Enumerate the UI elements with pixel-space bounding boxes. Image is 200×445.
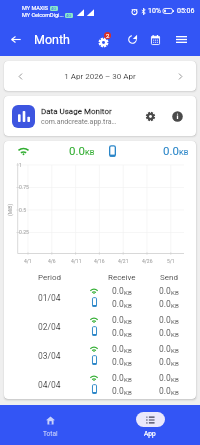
staticText: 0.75 bbox=[19, 184, 29, 190]
staticText: com.andcreate.app.tra… bbox=[41, 118, 117, 126]
staticText: 03/04 bbox=[38, 351, 61, 361]
staticText: 0.0 bbox=[159, 286, 171, 296]
button[interactable]: Previous period bbox=[4, 61, 36, 91]
staticText: KB bbox=[124, 347, 132, 354]
button[interactable]: Alerts settings bbox=[94, 28, 117, 51]
staticText: App bbox=[144, 430, 156, 438]
staticText: 0.25 bbox=[19, 229, 29, 235]
staticText: KB bbox=[171, 389, 179, 396]
staticText: 0.0 bbox=[159, 315, 171, 325]
staticText: Send bbox=[160, 273, 178, 282]
staticText: KB bbox=[124, 289, 132, 296]
button[interactable]: Calendar bbox=[144, 28, 167, 51]
button[interactable]: Menu bbox=[170, 28, 193, 51]
staticText: 0.0 bbox=[112, 315, 124, 325]
staticText: 5/1 bbox=[167, 258, 175, 264]
staticText: 0.0 bbox=[159, 328, 171, 338]
staticText: Period bbox=[38, 273, 61, 282]
staticText: 0.0 bbox=[112, 286, 124, 296]
staticText: KB bbox=[124, 331, 132, 338]
button[interactable]: App settings bbox=[140, 106, 161, 127]
staticText: 0.5 bbox=[19, 207, 26, 213]
button[interactable]: Next period bbox=[164, 61, 196, 91]
staticText: KB bbox=[124, 318, 132, 325]
staticText: 0.0 bbox=[69, 144, 85, 157]
staticText: Receive bbox=[108, 273, 136, 282]
staticText: 0.0 bbox=[159, 357, 171, 367]
button[interactable]: Data Usage Monitor bbox=[4, 96, 196, 136]
staticText: 0.0 bbox=[159, 344, 171, 354]
staticText: KB bbox=[85, 148, 95, 157]
staticText: KB bbox=[171, 347, 179, 354]
button[interactable]: 02/04 bbox=[11, 312, 196, 341]
staticText: 10% bbox=[148, 7, 161, 15]
staticText: 05:06 bbox=[177, 7, 195, 15]
button[interactable]: Total bbox=[0, 405, 100, 445]
staticText: KB bbox=[171, 331, 179, 338]
button[interactable]: App bbox=[100, 405, 200, 445]
staticText: MY CelcomDigi... bbox=[22, 12, 64, 18]
staticText: KB bbox=[171, 376, 179, 383]
staticText: 4/21 bbox=[118, 258, 129, 264]
staticText: 4G bbox=[51, 6, 57, 11]
staticText: 4/26 bbox=[142, 258, 153, 264]
staticText: 0.0 bbox=[159, 299, 171, 309]
staticText: (MiB) bbox=[7, 203, 13, 216]
staticText: 1 Apr 2026 – 30 Apr bbox=[36, 72, 164, 81]
staticText: KB bbox=[124, 389, 132, 396]
staticText: 0.0 bbox=[112, 373, 124, 383]
staticText: MY MAXIS bbox=[22, 5, 49, 11]
button[interactable]: App info bbox=[167, 106, 188, 127]
staticText: 1 bbox=[19, 162, 22, 168]
staticText: KB bbox=[171, 318, 179, 325]
staticText: 4/1 bbox=[24, 258, 32, 264]
staticText: 0.0 bbox=[112, 386, 124, 396]
staticText: KB bbox=[179, 148, 189, 157]
staticText: 0.0 bbox=[112, 344, 124, 354]
staticText: 04/04 bbox=[38, 380, 61, 390]
staticText: 2 bbox=[106, 32, 110, 39]
staticText: Data Usage Monitor bbox=[41, 107, 112, 116]
staticText: 4/16 bbox=[94, 258, 105, 264]
staticText: 0.0 bbox=[159, 373, 171, 383]
staticText: Total bbox=[43, 430, 58, 438]
staticText: 4/11 bbox=[71, 258, 82, 264]
staticText: KB bbox=[124, 376, 132, 383]
staticText: KB bbox=[171, 302, 179, 309]
staticText: KB bbox=[124, 360, 132, 367]
staticText: 0.0 bbox=[112, 299, 124, 309]
staticText: 0.0 bbox=[159, 386, 171, 396]
staticText: 4G bbox=[66, 13, 72, 18]
button[interactable]: Back bbox=[3, 26, 29, 52]
button[interactable]: 01/04 bbox=[11, 283, 196, 312]
button[interactable]: 03/04 bbox=[11, 341, 196, 370]
staticText: 01/04 bbox=[38, 293, 61, 303]
staticText: Month bbox=[34, 32, 70, 47]
button[interactable]: Refresh bbox=[121, 28, 144, 51]
staticText: KB bbox=[171, 360, 179, 367]
button[interactable]: 04/04 bbox=[11, 370, 196, 399]
staticText: 4/6 bbox=[48, 258, 56, 264]
staticText: KB bbox=[171, 289, 179, 296]
staticText: KB bbox=[124, 302, 132, 309]
staticText: 0.0 bbox=[112, 357, 124, 367]
staticText: 0.0 bbox=[163, 144, 179, 157]
staticText: 02/04 bbox=[38, 322, 61, 332]
staticText: 0.0 bbox=[112, 328, 124, 338]
